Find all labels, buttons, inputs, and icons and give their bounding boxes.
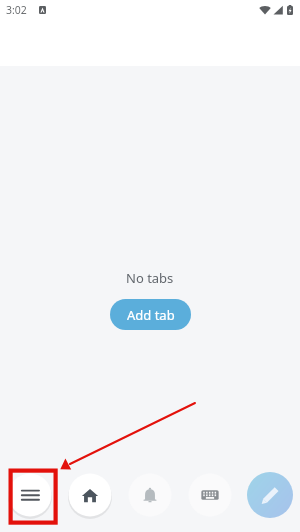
button[interactable]: Keyboard bbox=[187, 472, 233, 518]
staticText: No tabs bbox=[126, 269, 174, 287]
button[interactable]: Home bbox=[67, 472, 113, 518]
button[interactable]: Compose bbox=[247, 472, 293, 518]
button[interactable]: Menu bbox=[7, 472, 53, 518]
button[interactable]: Notifications bbox=[127, 472, 173, 518]
staticText: Add tab bbox=[127, 306, 175, 324]
button[interactable]: Add tab bbox=[110, 299, 191, 330]
staticText: 3:02 bbox=[6, 3, 27, 17]
